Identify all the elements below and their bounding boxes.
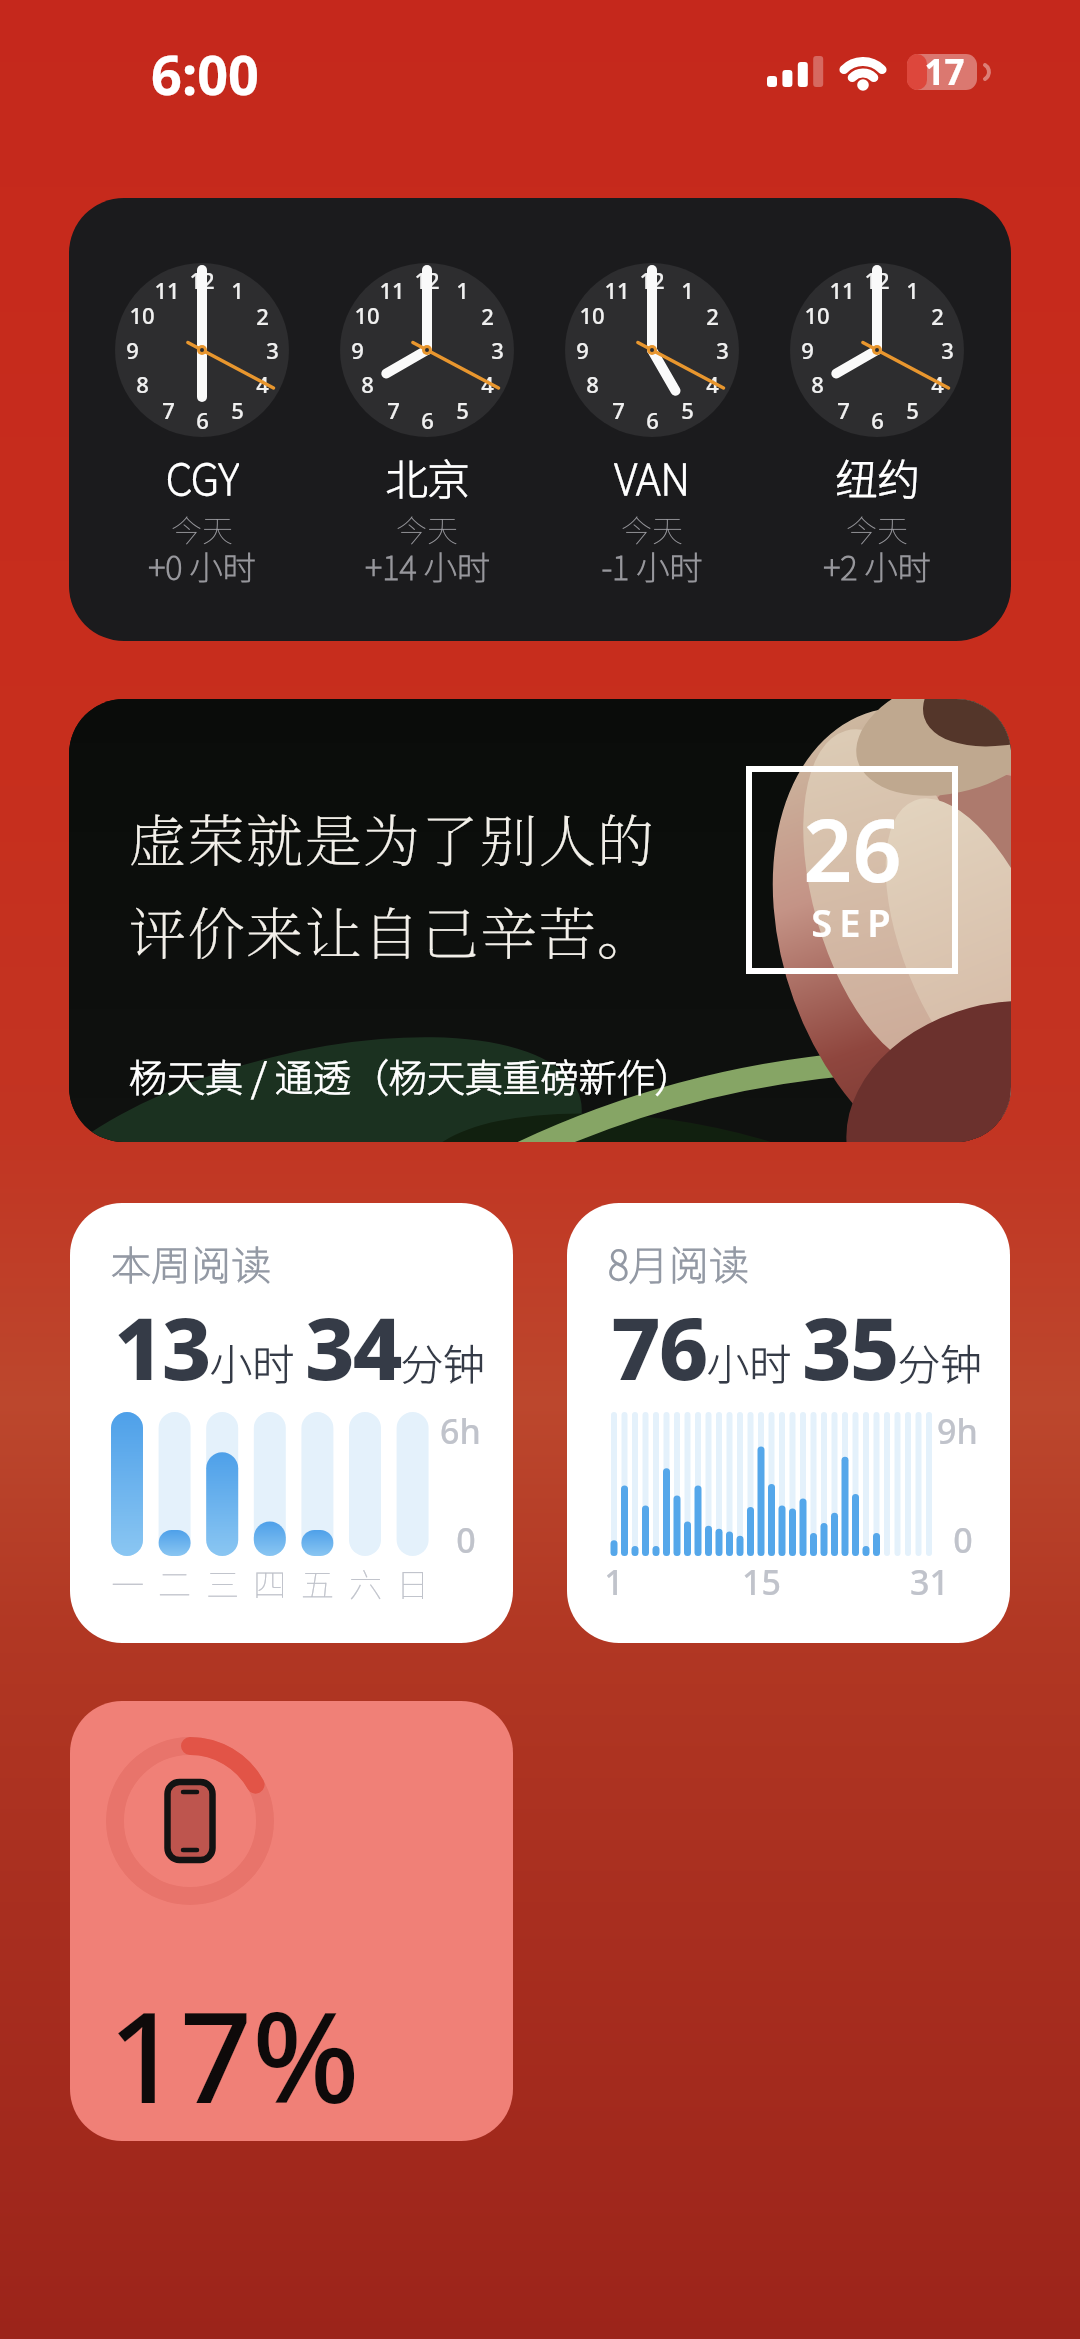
- staticText: -1 小时: [601, 542, 703, 586]
- staticText: 5: [231, 395, 244, 425]
- staticText: 3: [491, 335, 504, 365]
- button[interactable]: 1: [69, 198, 1011, 641]
- staticText: 8月阅读: [608, 1234, 749, 1292]
- staticText: 6: [871, 405, 884, 435]
- staticText: 小时: [210, 1331, 295, 1392]
- staticText: 8: [811, 369, 824, 399]
- staticText: 分钟: [898, 1331, 983, 1392]
- staticText: 7: [387, 395, 400, 425]
- staticText: 3: [941, 335, 954, 365]
- staticText: +14 小时: [365, 542, 490, 586]
- staticText: 2: [481, 301, 494, 331]
- staticText: 12: [189, 265, 215, 295]
- button[interactable]: 8月阅读: [567, 1203, 1010, 1643]
- staticText: 1: [456, 275, 469, 305]
- staticText: 10: [129, 300, 155, 330]
- staticText: 6: [196, 405, 209, 435]
- staticText: 六: [349, 1559, 382, 1603]
- staticText: 7: [612, 395, 625, 425]
- staticText: 6: [646, 405, 659, 435]
- staticText: 11: [829, 275, 855, 305]
- staticText: 12: [864, 265, 890, 295]
- staticText: 今天: [171, 506, 233, 550]
- staticText: 10: [579, 300, 605, 330]
- staticText: 31: [910, 1559, 949, 1603]
- staticText: 7: [837, 395, 850, 425]
- staticText: 五: [301, 1559, 334, 1603]
- staticText: 12: [639, 265, 665, 295]
- staticText: 1: [604, 1559, 624, 1603]
- staticText: 76: [611, 1288, 707, 1405]
- staticText: 4: [481, 369, 494, 399]
- staticText: 5: [456, 395, 469, 425]
- staticText: 6h: [440, 1408, 481, 1452]
- staticText: 7: [162, 395, 175, 425]
- staticText: 2: [931, 301, 944, 331]
- staticText: 1: [231, 275, 244, 305]
- staticText: 11: [154, 275, 180, 305]
- staticText: 0: [456, 1517, 476, 1561]
- staticText: 三: [206, 1559, 239, 1603]
- staticText: 6:00: [151, 37, 259, 107]
- staticText: 3: [266, 335, 279, 365]
- button[interactable]: 17%: [70, 1701, 513, 2141]
- staticText: SEP: [811, 896, 898, 948]
- button[interactable]: 虚荣就是为了别人的: [69, 699, 1011, 1142]
- staticText: 分钟: [401, 1331, 486, 1392]
- staticText: 今天: [621, 506, 683, 550]
- staticText: 12: [414, 265, 440, 295]
- staticText: 8: [586, 369, 599, 399]
- staticText: 4: [931, 369, 944, 399]
- staticText: 5: [681, 395, 694, 425]
- staticText: 10: [804, 300, 830, 330]
- staticText: 5: [906, 395, 919, 425]
- staticText: 9: [801, 335, 814, 365]
- staticText: 4: [256, 369, 269, 399]
- staticText: 1: [906, 275, 919, 305]
- staticText: VAN: [614, 446, 690, 506]
- staticText: 17%: [108, 1968, 360, 2108]
- staticText: 17: [924, 48, 965, 96]
- staticText: 纽约: [835, 446, 920, 506]
- staticText: 本周阅读: [111, 1234, 271, 1292]
- staticText: 0: [953, 1517, 973, 1561]
- staticText: +0 小时: [148, 542, 256, 586]
- staticText: 11: [604, 275, 630, 305]
- staticText: 小时: [707, 1331, 792, 1392]
- staticText: 四: [253, 1559, 286, 1603]
- staticText: 虚荣就是为了别人的: [129, 796, 656, 878]
- staticText: 11: [379, 275, 405, 305]
- staticText: 6: [421, 405, 434, 435]
- staticText: 9: [126, 335, 139, 365]
- staticText: 评价来让自己辛苦。: [129, 889, 656, 971]
- staticText: 26: [803, 790, 902, 900]
- staticText: +2 小时: [823, 542, 931, 586]
- staticText: 15: [742, 1559, 781, 1603]
- staticText: 9h: [937, 1408, 978, 1452]
- button[interactable]: 本周阅读: [70, 1203, 513, 1643]
- staticText: 13: [114, 1288, 210, 1405]
- staticText: 2: [706, 301, 719, 331]
- staticText: 杨天真 / 通透（杨天真重磅新作）: [129, 1048, 693, 1103]
- staticText: 3: [716, 335, 729, 365]
- staticText: 今天: [846, 506, 908, 550]
- staticText: 4: [706, 369, 719, 399]
- staticText: 9: [576, 335, 589, 365]
- staticText: 9: [351, 335, 364, 365]
- staticText: 34: [305, 1288, 401, 1405]
- staticText: 8: [136, 369, 149, 399]
- staticText: 一: [111, 1559, 144, 1603]
- staticText: CGY: [166, 446, 239, 506]
- staticText: 35: [802, 1288, 898, 1405]
- staticText: 10: [354, 300, 380, 330]
- staticText: 8: [361, 369, 374, 399]
- staticText: 二: [158, 1559, 191, 1603]
- staticText: 2: [256, 301, 269, 331]
- staticText: 今天: [396, 506, 458, 550]
- staticText: 1: [681, 275, 694, 305]
- staticText: 日: [396, 1559, 429, 1603]
- staticText: 北京: [385, 446, 470, 506]
